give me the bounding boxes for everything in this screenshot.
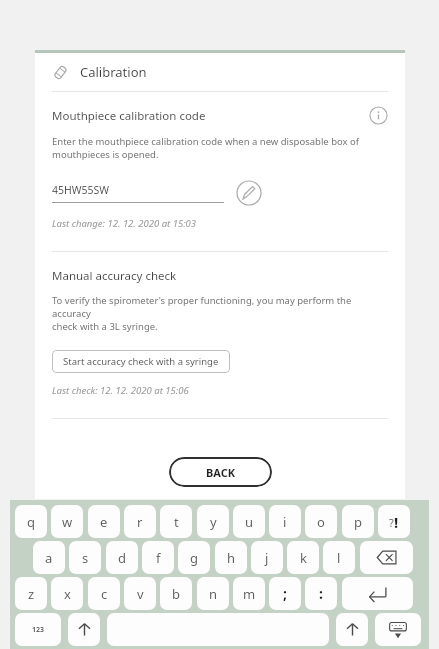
staticText: i (283, 513, 287, 531)
other: Mouthpiece (52, 64, 69, 81)
button[interactable]: k (287, 541, 319, 574)
button[interactable]: c (88, 577, 120, 610)
staticText: ? (389, 515, 394, 530)
button[interactable]: : (305, 577, 337, 610)
button[interactable]: Hide keyboard (375, 613, 421, 646)
staticText: a (45, 549, 53, 567)
staticText: m (243, 585, 256, 603)
button[interactable]: Shift (336, 613, 368, 646)
staticText: b (172, 585, 180, 603)
staticText: Calibration (80, 63, 147, 81)
button[interactable]: z (15, 577, 47, 610)
staticText: l (337, 549, 341, 567)
staticText: e (100, 513, 108, 531)
staticText: o (317, 513, 325, 531)
staticText: : (319, 584, 323, 603)
staticText: d (118, 549, 126, 567)
staticText: Manual accuracy check (52, 268, 177, 284)
button[interactable]: j (251, 541, 283, 574)
button[interactable]: w (51, 505, 83, 538)
staticText: x (64, 585, 71, 603)
staticText: y (210, 513, 217, 531)
button[interactable]: Information (369, 106, 388, 125)
staticText: 123 (32, 625, 45, 635)
button[interactable]: f (142, 541, 174, 574)
button[interactable]: x (51, 577, 83, 610)
staticText: h (227, 549, 236, 567)
staticText: g (190, 549, 198, 567)
staticText: c (101, 585, 108, 603)
staticText: w (62, 513, 73, 531)
staticText: t (174, 513, 179, 531)
button[interactable]: g (178, 541, 210, 574)
button[interactable]: y (197, 505, 229, 538)
staticText: r (137, 513, 143, 531)
button[interactable]: BACK (169, 457, 272, 487)
staticText: s (82, 549, 89, 567)
staticText: j (265, 549, 269, 567)
staticText: k (300, 549, 307, 567)
button[interactable]: Space (107, 613, 329, 646)
button[interactable]: r (124, 505, 156, 538)
staticText: To verify the spirometer's proper functi… (52, 294, 388, 333)
button[interactable]: n (197, 577, 229, 610)
staticText: q (27, 513, 35, 531)
staticText: BACK (206, 465, 236, 480)
staticText: ; (283, 584, 287, 603)
staticText: Start accuracy check with a syringe (63, 355, 219, 368)
staticText: ! (394, 512, 399, 532)
button[interactable]: Question and exclamation marks (378, 505, 410, 538)
button[interactable]: ; (269, 577, 301, 610)
button[interactable]: v (124, 577, 156, 610)
staticText: f (156, 549, 161, 567)
staticText: n (209, 585, 218, 603)
staticText: 45HW55SW (52, 183, 110, 197)
staticText: v (137, 585, 144, 603)
staticText: u (245, 513, 254, 531)
button[interactable]: p (342, 505, 374, 538)
button[interactable]: u (233, 505, 265, 538)
button[interactable]: Start accuracy check with a syringe (52, 350, 230, 373)
staticText: Last change: 12. 12. 2020 at 15:03 (52, 217, 197, 230)
button[interactable]: s (69, 541, 101, 574)
staticText: Last check: 12. 12. 2020 at 15:06 (52, 384, 189, 397)
button[interactable]: Edit calibration code (236, 180, 262, 206)
button[interactable]: Numbers and symbols (15, 613, 61, 646)
button[interactable]: l (323, 541, 355, 574)
button[interactable]: t (160, 505, 192, 538)
button[interactable]: a (33, 541, 65, 574)
button[interactable]: m (233, 577, 265, 610)
button[interactable]: Shift (68, 613, 100, 646)
button[interactable]: b (160, 577, 192, 610)
button[interactable]: d (106, 541, 138, 574)
button[interactable]: Enter (342, 577, 413, 610)
staticText: p (354, 513, 362, 531)
button[interactable]: i (269, 505, 301, 538)
staticText: z (28, 585, 35, 603)
button[interactable]: q (15, 505, 47, 538)
staticText: Mouthpiece calibration code (52, 108, 369, 124)
button[interactable]: h (215, 541, 247, 574)
button[interactable]: e (88, 505, 120, 538)
staticText: Enter the mouthpiece calibration code wh… (52, 135, 360, 161)
button[interactable]: o (305, 505, 337, 538)
button[interactable]: Backspace (360, 541, 413, 574)
